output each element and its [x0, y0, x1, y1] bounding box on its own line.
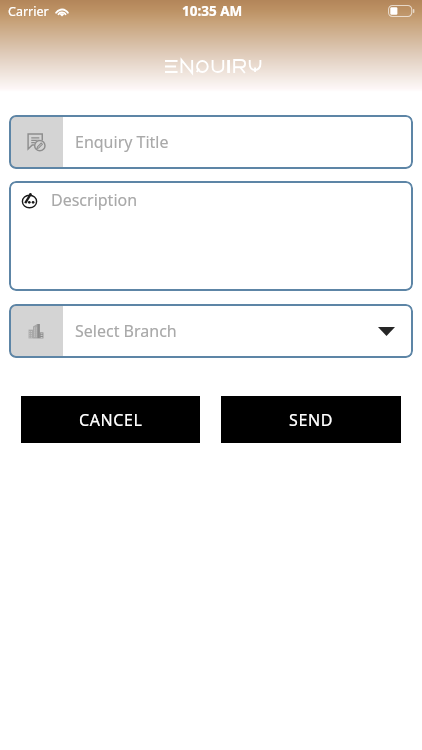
staticText: Select Branch [75, 320, 378, 342]
button[interactable]: Enquiry Title [9, 115, 413, 169]
button[interactable]: Select Branch [9, 304, 413, 358]
staticText: Enquiry Title [75, 131, 169, 153]
staticText: 10:35 AM [182, 2, 243, 20]
staticText: Description [51, 189, 138, 211]
button[interactable]: CANCEL [21, 396, 200, 443]
staticText: SEND [289, 409, 333, 431]
other: ENQUIRY [165, 60, 257, 73]
staticText: CANCEL [79, 409, 143, 431]
staticText: Carrier [8, 3, 49, 20]
button[interactable]: Description [9, 181, 413, 291]
button[interactable]: SEND [221, 396, 401, 443]
